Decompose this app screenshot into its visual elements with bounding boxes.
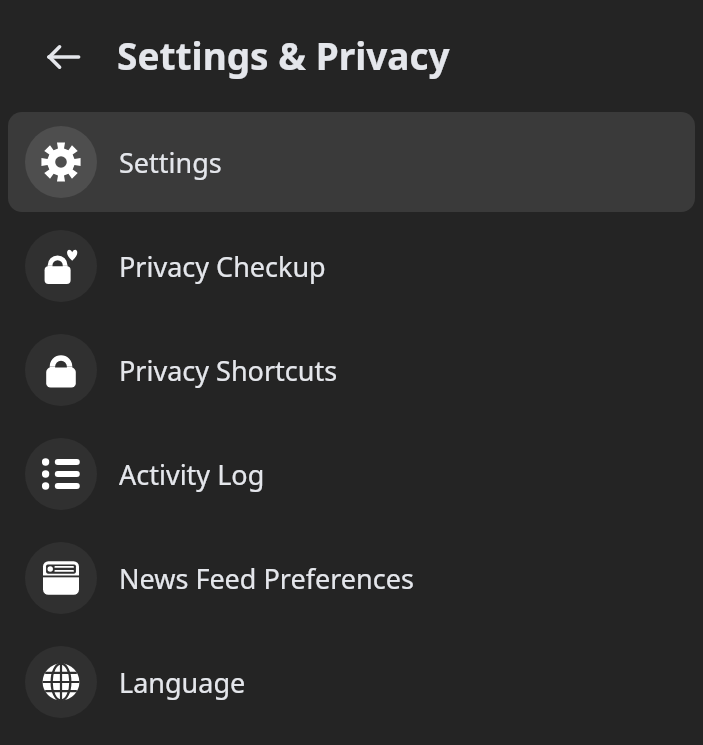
button[interactable]: Language — [8, 632, 695, 732]
staticText: Settings — [119, 144, 222, 181]
staticText: News Feed Preferences — [119, 560, 414, 597]
button[interactable]: News Feed Preferences — [8, 528, 695, 628]
button[interactable]: Settings — [8, 112, 695, 212]
staticText: Language — [119, 664, 246, 701]
button[interactable]: Privacy Checkup — [8, 216, 695, 316]
staticText: Privacy Checkup — [119, 248, 326, 285]
button[interactable]: Activity Log — [8, 424, 695, 524]
staticText: Activity Log — [119, 456, 265, 493]
button[interactable]: Back — [34, 28, 92, 86]
button[interactable]: Privacy Shortcuts — [8, 320, 695, 420]
staticText: Settings & Privacy — [117, 30, 450, 80]
staticText: Privacy Shortcuts — [119, 352, 338, 389]
